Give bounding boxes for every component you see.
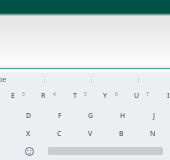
button[interactable]: J: [138, 106, 169, 125]
button[interactable]: U: [121, 86, 152, 105]
staticText: J: [153, 111, 155, 120]
staticText: C: [57, 129, 62, 138]
staticText: V: [88, 129, 93, 138]
staticText: E: [11, 91, 15, 100]
staticText: 3: [22, 91, 25, 98]
button[interactable]: H: [107, 106, 138, 125]
button[interactable]: Emoji: [19, 141, 39, 160]
button[interactable]: R: [28, 86, 59, 105]
staticText: F: [58, 111, 62, 120]
staticText: U: [134, 91, 140, 100]
staticText: be: [0, 75, 7, 84]
staticText: G: [88, 111, 94, 120]
staticText: 4: [53, 91, 56, 98]
staticText: R: [41, 91, 46, 100]
button[interactable]: I: [153, 86, 170, 105]
staticText: T: [73, 91, 77, 100]
staticText: D: [26, 111, 32, 120]
button[interactable]: T: [59, 86, 90, 105]
button[interactable]: V: [75, 124, 106, 143]
staticText: I: [167, 91, 170, 100]
staticText: H: [120, 111, 126, 120]
button[interactable]: be: [0, 73, 44, 83]
button[interactable]: D: [13, 106, 44, 125]
button[interactable]: B: [106, 124, 137, 143]
button[interactable]: X: [13, 124, 44, 143]
button[interactable]: G: [75, 106, 106, 125]
staticText: B: [119, 129, 124, 138]
button[interactable]: E: [0, 86, 28, 105]
button[interactable]: N: [137, 124, 168, 143]
staticText: X: [26, 129, 31, 138]
button[interactable]: F: [44, 106, 75, 125]
staticText: 6: [115, 91, 118, 98]
button[interactable]: C: [44, 124, 75, 143]
staticText: N: [150, 129, 156, 138]
staticText: 5: [84, 91, 87, 98]
staticText: 7: [146, 91, 149, 98]
button[interactable]: Y: [90, 86, 121, 105]
staticText: Y: [103, 91, 108, 100]
